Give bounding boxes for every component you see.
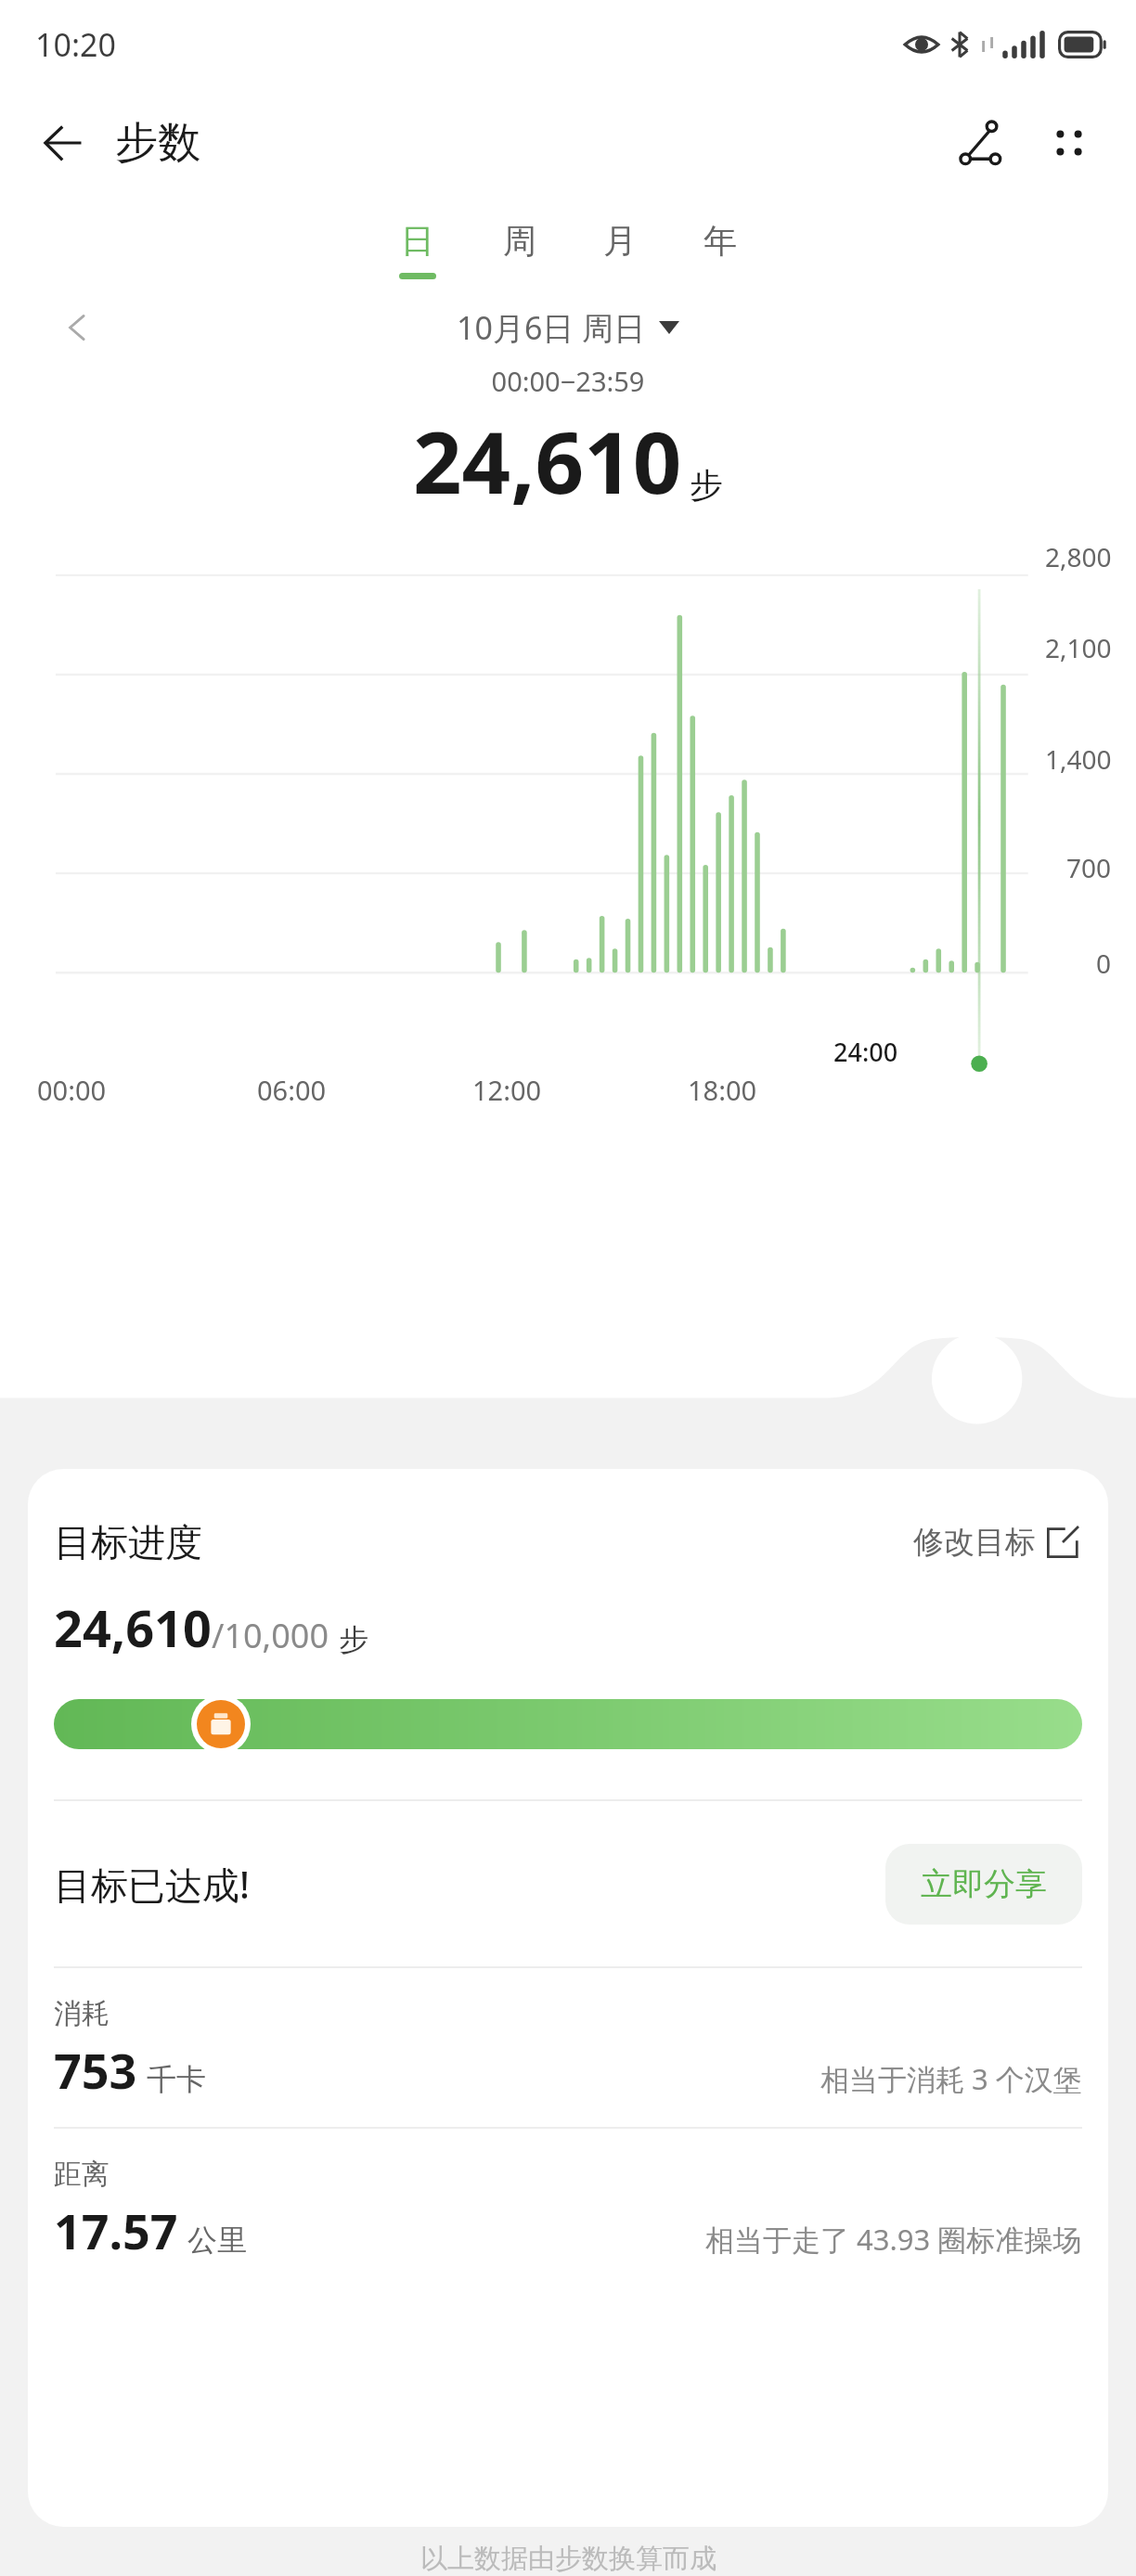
staticText: 1,400 bbox=[1045, 741, 1112, 777]
staticText: 00:00−23:59 bbox=[0, 363, 1136, 399]
staticText: /10,000 bbox=[212, 1613, 329, 1658]
staticText: 24,610 bbox=[413, 403, 682, 519]
staticText: 距离 bbox=[54, 2157, 110, 2192]
staticText: 千卡 bbox=[147, 2061, 206, 2098]
button[interactable]: Previous day bbox=[50, 300, 106, 355]
button[interactable]: Back bbox=[28, 106, 102, 180]
staticText: 06:00 bbox=[257, 1072, 327, 1108]
button[interactable]: Share bbox=[943, 104, 1021, 182]
staticText: 目标已达成! bbox=[54, 1859, 250, 1910]
button[interactable]: 立即分享 bbox=[885, 1844, 1082, 1925]
staticText: 相当于走了 43.93 圈标准操场 bbox=[705, 2220, 1082, 2259]
staticText: 17.57 bbox=[54, 2197, 178, 2263]
staticText: 2,100 bbox=[1045, 630, 1112, 665]
staticText: 700 bbox=[1066, 850, 1112, 885]
staticText: 2,800 bbox=[1045, 539, 1112, 574]
staticText: 步 bbox=[339, 1621, 368, 1658]
staticText: 24,610 bbox=[54, 1593, 212, 1662]
button[interactable]: 修改目标 bbox=[910, 1519, 1082, 1565]
button[interactable]: 距离 bbox=[54, 2157, 1082, 2263]
staticText: 月 bbox=[603, 220, 637, 262]
staticText: 目标进度 bbox=[54, 1519, 202, 1565]
staticText: 以上数据由步数换算而成 bbox=[420, 2542, 716, 2576]
staticText: 相当于消耗 3 个汉堡 bbox=[820, 2059, 1082, 2098]
staticText: 日 bbox=[401, 220, 434, 262]
staticText: 24:00 bbox=[833, 1035, 898, 1069]
staticText: 18:00 bbox=[688, 1072, 757, 1108]
staticText: 10月6日 周日 bbox=[457, 306, 646, 349]
button[interactable]: 周 bbox=[470, 216, 570, 283]
staticText: 消耗 bbox=[54, 1996, 110, 2031]
button[interactable]: 10月6日 周日 bbox=[451, 301, 685, 354]
staticText: 周 bbox=[503, 220, 536, 262]
staticText: 00:00 bbox=[37, 1072, 107, 1108]
button[interactable]: 年 bbox=[670, 216, 770, 283]
staticText: 12:00 bbox=[472, 1072, 542, 1108]
button[interactable]: More options bbox=[1030, 104, 1108, 182]
staticText: 10:20 bbox=[35, 23, 116, 66]
button[interactable]: 日 bbox=[366, 216, 470, 283]
staticText: 修改目标 bbox=[913, 1523, 1036, 1562]
staticText: 步数 bbox=[115, 116, 200, 170]
staticText: 753 bbox=[54, 2037, 137, 2103]
button[interactable]: 消耗 bbox=[54, 1996, 1082, 2103]
staticText: 步 bbox=[690, 464, 723, 506]
staticText: 公里 bbox=[187, 2222, 247, 2259]
staticText: 立即分享 bbox=[921, 1864, 1047, 1904]
staticText: 0 bbox=[1096, 946, 1112, 981]
staticText: 年 bbox=[704, 220, 737, 262]
button[interactable]: 月 bbox=[570, 216, 670, 283]
